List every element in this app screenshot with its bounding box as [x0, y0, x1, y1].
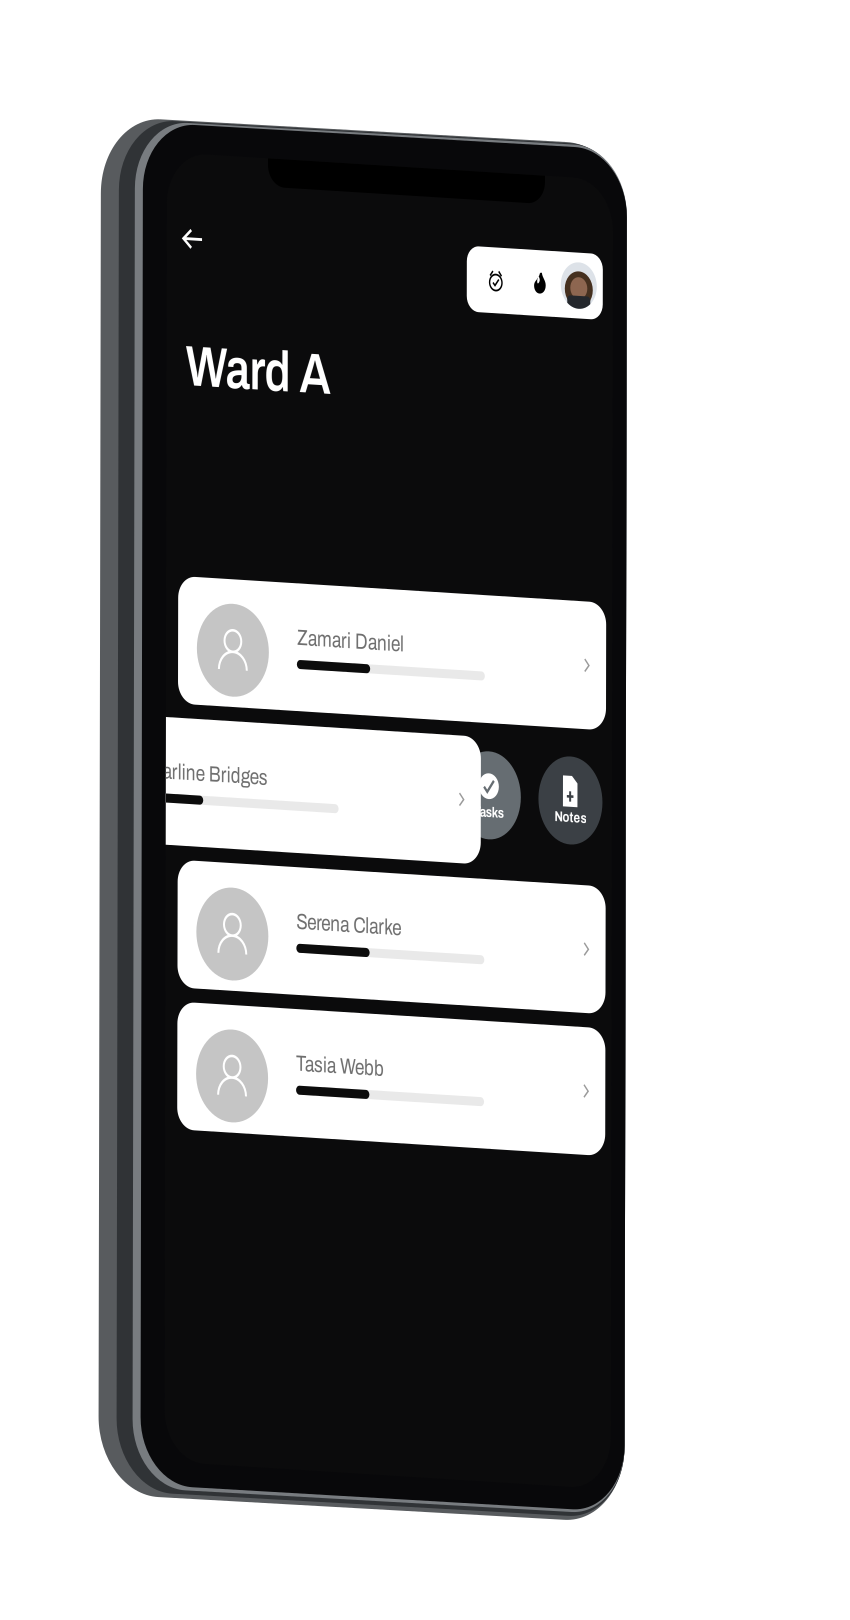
staticText: Tasia Webb [298, 843, 386, 861]
button[interactable]: Notes [540, 601, 604, 669]
button[interactable]: Profile [561, 216, 597, 255]
button[interactable]: Carline Bridges [33, 590, 482, 689]
button[interactable]: Zamari Daniel [179, 480, 607, 579]
staticText: Carline Bridges [152, 623, 269, 641]
button[interactable]: Serena Clarke [179, 700, 607, 799]
button[interactable]: Back [179, 205, 206, 231]
button[interactable]: Tasia Webb [179, 810, 607, 909]
